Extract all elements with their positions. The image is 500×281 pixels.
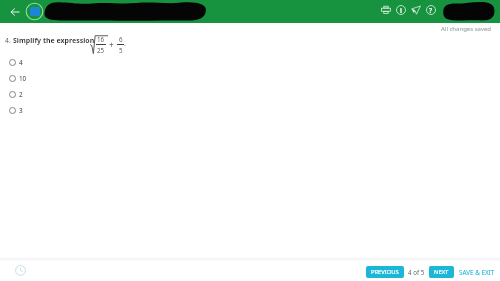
staticText: 4 of 5 <box>408 268 425 277</box>
button[interactable]: Help <box>424 3 438 17</box>
staticText: 25 <box>97 46 105 54</box>
button[interactable]: Back <box>6 3 23 20</box>
button[interactable]: Print <box>379 3 393 17</box>
staticText: 4. <box>5 36 11 45</box>
staticText: i <box>400 6 402 15</box>
button[interactable]: NEXT <box>429 266 454 278</box>
staticText: . <box>124 39 126 49</box>
staticText: PREVIOUS <box>371 268 399 276</box>
button[interactable]: 10 <box>9 70 27 86</box>
staticText: NEXT <box>434 268 449 276</box>
staticText: 2 <box>19 90 23 99</box>
staticText: ? <box>429 6 433 15</box>
button[interactable]: Information <box>394 3 408 17</box>
button[interactable]: PREVIOUS <box>366 266 404 278</box>
button[interactable]: SAVE & EXIT <box>459 266 495 278</box>
button[interactable]: 4 <box>9 54 23 70</box>
staticText: + <box>109 39 114 50</box>
staticText: 5 <box>119 46 123 54</box>
staticText: SAVE & EXIT <box>459 268 495 277</box>
button[interactable]: 3 <box>9 102 23 118</box>
staticText: Simplify the expression <box>13 36 95 46</box>
staticText: All changes saved <box>441 25 492 33</box>
staticText: 6 <box>119 35 123 43</box>
button[interactable]: Timer <box>13 263 27 277</box>
staticText: 4 <box>19 58 23 67</box>
staticText: 3 <box>19 106 23 115</box>
staticText: 10 <box>19 74 27 83</box>
button[interactable]: Send <box>409 3 423 17</box>
button[interactable]: 2 <box>9 86 23 102</box>
staticText: 16 <box>97 35 105 43</box>
